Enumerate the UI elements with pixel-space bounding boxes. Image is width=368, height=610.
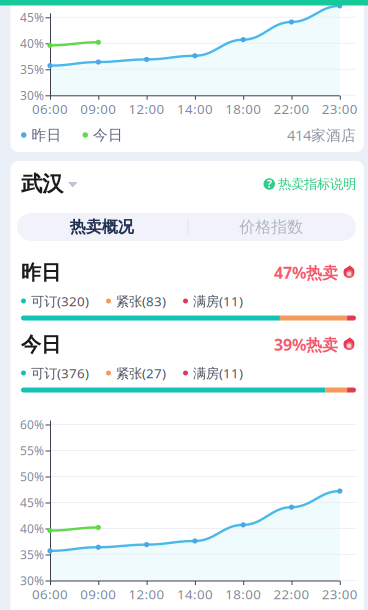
staticText: 45% bbox=[20, 494, 44, 510]
staticText: 满房(11) bbox=[193, 364, 243, 382]
staticText: 30% bbox=[20, 572, 44, 588]
staticText: 昨日 bbox=[31, 126, 61, 144]
staticText: 14:00 bbox=[177, 100, 213, 118]
staticText: 55% bbox=[20, 442, 44, 458]
button[interactable]: 热卖概况 bbox=[17, 213, 186, 241]
staticText: 47%热卖 bbox=[274, 262, 338, 283]
staticText: 30% bbox=[20, 87, 44, 103]
staticText: 18:00 bbox=[225, 100, 261, 118]
staticText: 39%热卖 bbox=[274, 334, 338, 355]
staticText: 23:00 bbox=[322, 585, 358, 603]
staticText: 12:00 bbox=[129, 100, 165, 118]
staticText: 22:00 bbox=[273, 585, 309, 603]
staticText: 18:00 bbox=[225, 585, 261, 603]
staticText: 14:00 bbox=[177, 585, 213, 603]
staticText: 06:00 bbox=[32, 100, 68, 118]
staticText: 今日 bbox=[93, 126, 123, 144]
staticText: 22:00 bbox=[273, 100, 309, 118]
staticText: 50% bbox=[20, 468, 44, 484]
staticText: 可订(320) bbox=[31, 292, 89, 310]
staticText: 满房(11) bbox=[193, 292, 243, 310]
staticText: 23:00 bbox=[322, 100, 358, 118]
staticText: 40% bbox=[20, 520, 44, 536]
staticText: 09:00 bbox=[80, 585, 116, 603]
staticText: 今日 bbox=[21, 332, 61, 357]
staticText: 紧张(27) bbox=[116, 364, 166, 382]
staticText: 武汉 bbox=[21, 171, 63, 197]
staticText: 昨日 bbox=[21, 260, 61, 285]
staticText: 60% bbox=[20, 416, 44, 432]
staticText: 414家酒店 bbox=[287, 125, 356, 145]
staticText: 价格指数 bbox=[239, 217, 303, 237]
staticText: 45% bbox=[20, 9, 44, 25]
staticText: 热卖概况 bbox=[70, 217, 134, 237]
staticText: 35% bbox=[20, 61, 44, 77]
staticText: 35% bbox=[20, 546, 44, 562]
staticText: ? bbox=[267, 177, 272, 191]
button[interactable]: ? bbox=[250, 175, 356, 193]
button[interactable]: 价格指数 bbox=[186, 213, 356, 241]
staticText: 可订(376) bbox=[31, 364, 89, 382]
staticText: 12:00 bbox=[129, 585, 165, 603]
staticText: 热卖指标说明 bbox=[278, 176, 356, 192]
button[interactable]: 武汉 bbox=[21, 172, 191, 196]
staticText: 09:00 bbox=[80, 100, 116, 118]
staticText: 紧张(83) bbox=[116, 292, 166, 310]
staticText: 40% bbox=[20, 35, 44, 51]
staticText: 06:00 bbox=[32, 585, 68, 603]
